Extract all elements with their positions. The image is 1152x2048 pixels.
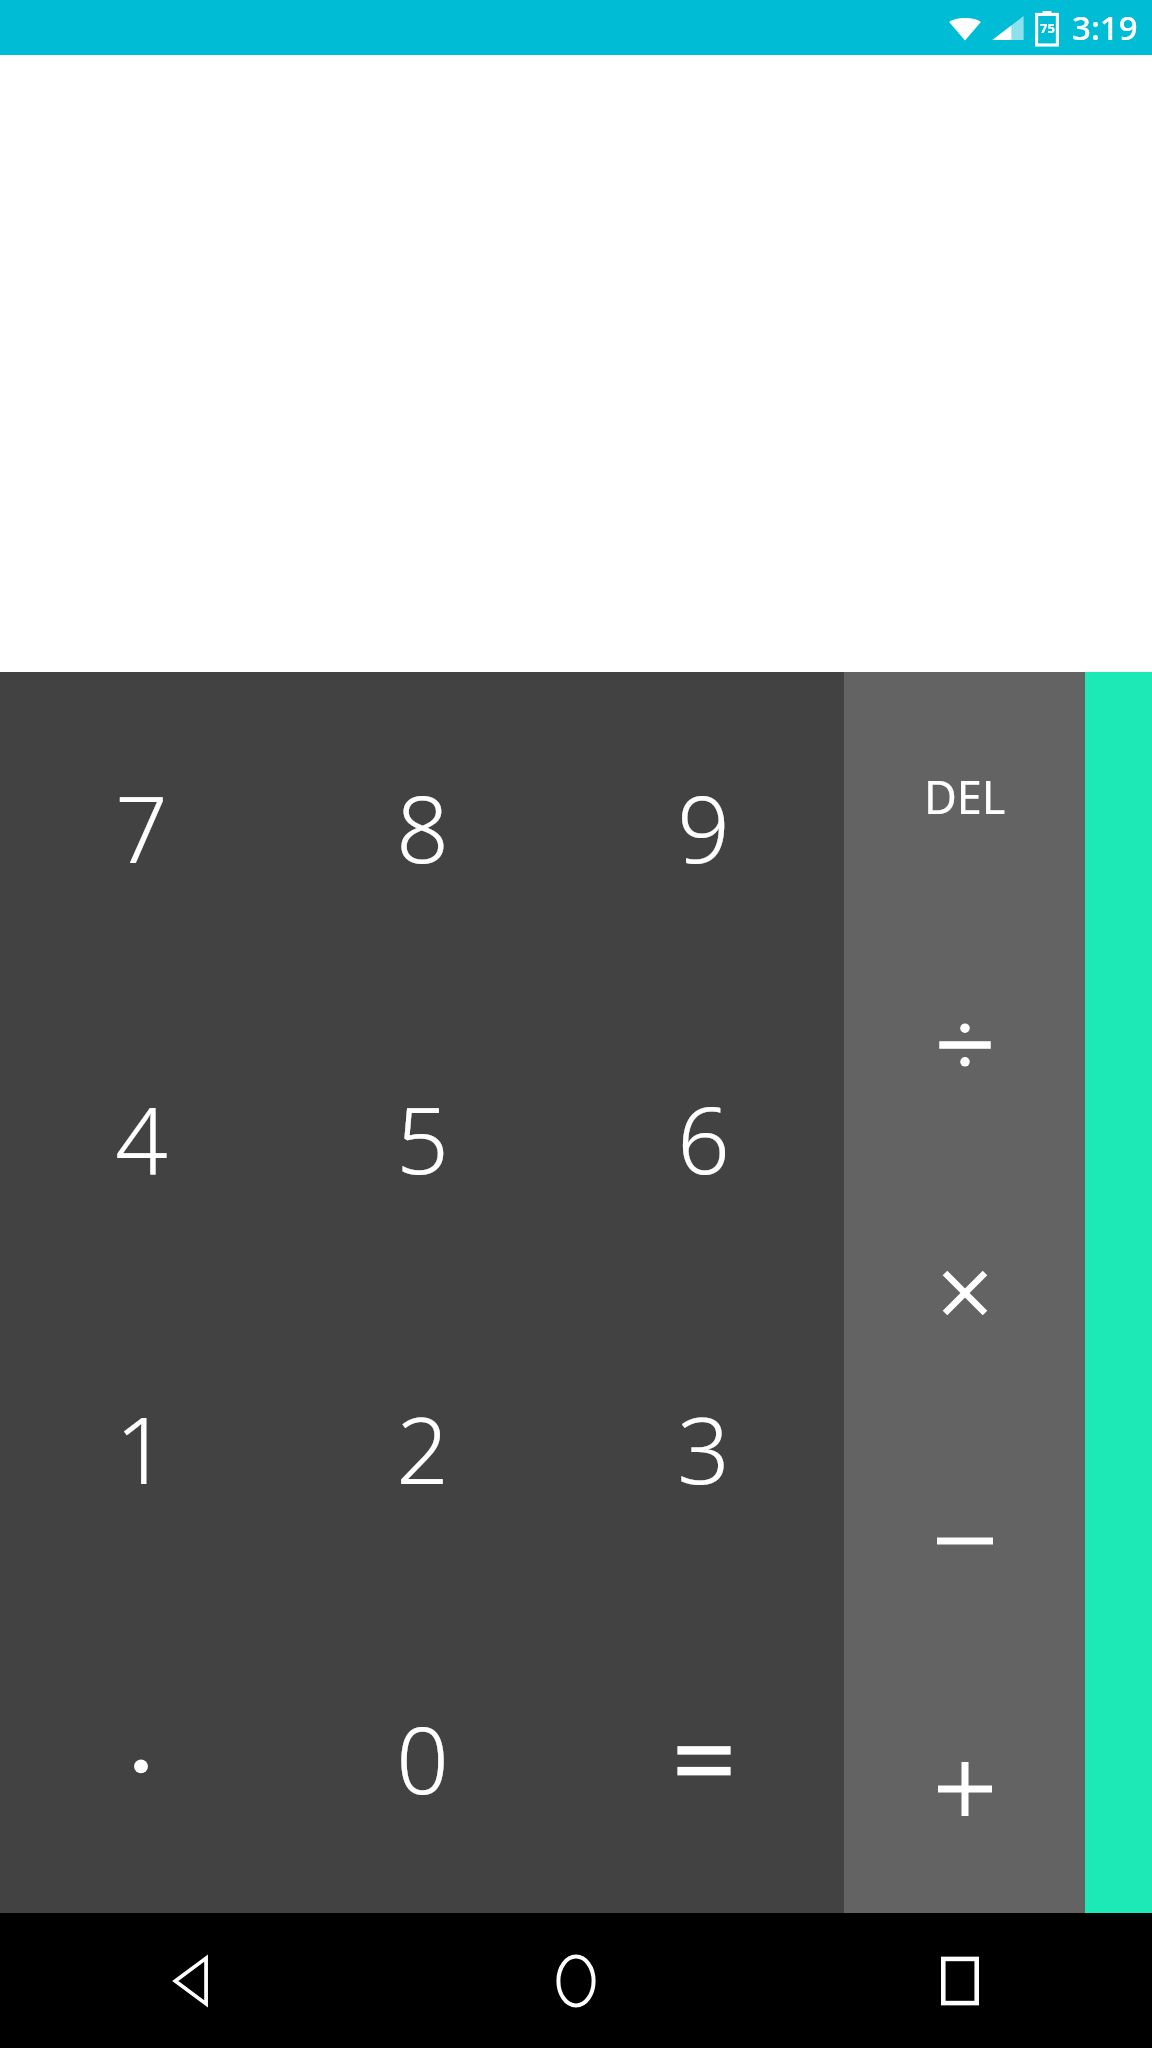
button[interactable]: 4	[0, 983, 282, 1293]
staticText: 1	[115, 1386, 168, 1511]
button[interactable]: Back	[0, 1913, 384, 2048]
button[interactable]: 5	[282, 983, 563, 1293]
button[interactable]: 8	[282, 672, 563, 983]
button[interactable]: 2	[282, 1293, 563, 1603]
staticText: DEL	[924, 766, 1006, 827]
button[interactable]	[563, 1603, 844, 1913]
staticText: 3	[677, 1386, 730, 1511]
staticText: 5	[396, 1076, 449, 1201]
button[interactable]: 0	[282, 1603, 563, 1913]
button[interactable]: 9	[563, 672, 844, 983]
button[interactable]: 7	[0, 672, 282, 983]
staticText: 3:19	[1072, 5, 1138, 50]
staticText: 75	[1040, 19, 1055, 37]
button[interactable]: 6	[563, 983, 844, 1293]
staticText: 2	[396, 1386, 449, 1511]
button[interactable]: 1	[0, 1293, 282, 1603]
button[interactable]: Subtract	[844, 1417, 1085, 1665]
button[interactable]: Divide	[844, 921, 1085, 1169]
staticText: 7	[115, 765, 168, 890]
button[interactable]: Add	[844, 1665, 1085, 1913]
staticText: 8	[396, 765, 449, 890]
staticText: 4	[115, 1076, 168, 1201]
button[interactable]: Recent apps	[768, 1913, 1152, 2048]
staticText: 0	[396, 1696, 449, 1821]
staticText: 9	[677, 765, 730, 890]
button[interactable]: 3	[563, 1293, 844, 1603]
staticText: 6	[677, 1076, 730, 1201]
button[interactable]: Multiply	[844, 1169, 1085, 1417]
button[interactable]	[0, 1603, 282, 1913]
button[interactable]: Home	[384, 1913, 768, 2048]
button[interactable]: DEL	[844, 672, 1085, 921]
